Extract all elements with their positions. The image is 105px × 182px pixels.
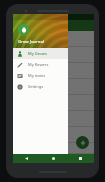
button[interactable]: Back <box>24 156 29 161</box>
button[interactable] <box>13 143 94 154</box>
staticText: My flowers <box>28 62 49 67</box>
button[interactable] <box>13 79 94 95</box>
button[interactable] <box>13 111 94 127</box>
staticText: My Grows <box>28 51 47 56</box>
button[interactable] <box>13 31 94 47</box>
button[interactable]: My flowers <box>13 59 68 70</box>
staticText: Settings <box>28 84 44 89</box>
button[interactable] <box>13 47 94 63</box>
button[interactable]: Add grow <box>76 136 89 149</box>
button[interactable]: Settings <box>13 81 68 92</box>
button[interactable] <box>13 95 94 111</box>
button[interactable]: Home <box>52 157 55 160</box>
button[interactable] <box>13 127 94 143</box>
staticText: My notes <box>28 73 46 78</box>
button[interactable]: My notes <box>13 70 68 81</box>
button[interactable]: My Grows <box>13 48 68 59</box>
button[interactable] <box>13 63 94 79</box>
staticText: Grow Journal <box>18 39 44 45</box>
